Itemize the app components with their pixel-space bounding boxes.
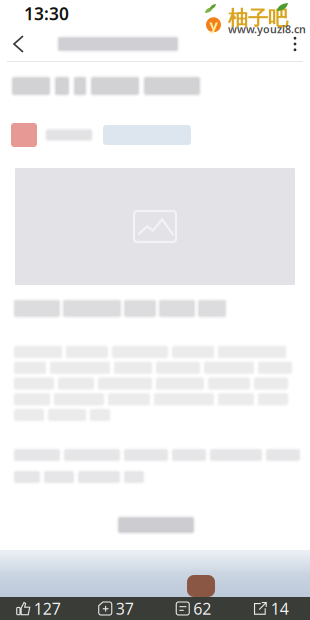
staticText: www.youzi8.cn: [228, 22, 306, 36]
staticText: 14: [271, 598, 289, 619]
staticText: 柚子吧: [228, 6, 288, 31]
button[interactable]: Back: [0, 27, 37, 61]
staticText: y: [209, 15, 217, 34]
staticText: 62: [193, 598, 211, 619]
button[interactable]: 14: [232, 597, 310, 620]
staticText: 127: [34, 598, 61, 619]
button[interactable]: 62: [155, 597, 232, 620]
button[interactable]: 37: [77, 597, 155, 620]
staticText: 37: [116, 598, 134, 619]
button[interactable]: More options: [280, 27, 310, 61]
staticText: 13:30: [24, 2, 69, 25]
button[interactable]: 127: [0, 597, 77, 620]
